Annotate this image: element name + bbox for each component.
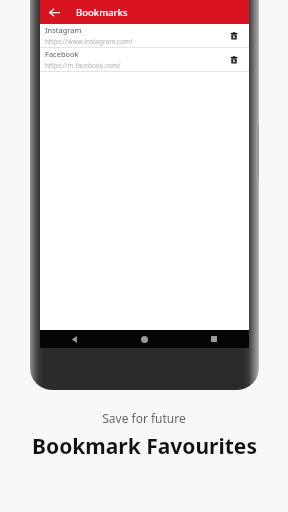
button[interactable]: Instagram [40,24,249,47]
button[interactable]: Facebook [40,48,249,71]
button[interactable]: Delete bookmark [227,29,241,43]
button[interactable]: Delete bookmark [227,53,241,67]
staticText: Bookmark Favourites [32,432,257,461]
button[interactable]: Recent apps [179,330,249,348]
staticText: https://m.facebook.com/ [45,61,121,70]
staticText: Bookmarks [76,6,128,19]
staticText: Facebook [45,49,79,59]
button[interactable]: Back [40,330,109,348]
staticText: https://www.instagram.com/ [45,37,133,46]
staticText: Instagram [45,25,82,35]
staticText: Save for future [102,410,186,426]
button[interactable]: Home [109,330,179,348]
button[interactable]: Back [46,4,62,20]
